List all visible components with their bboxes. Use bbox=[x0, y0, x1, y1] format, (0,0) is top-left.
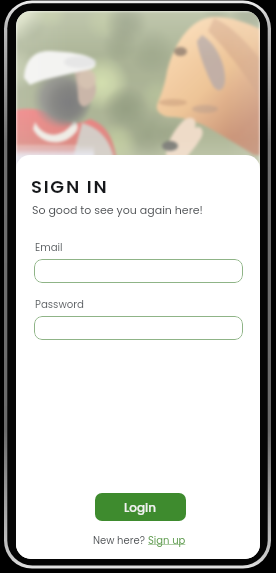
staticText: Login bbox=[124, 499, 157, 516]
staticText: So good to see you again here! bbox=[32, 202, 203, 217]
staticText: SIGN IN bbox=[31, 174, 109, 199]
staticText: New here? bbox=[93, 533, 148, 547]
button[interactable] bbox=[34, 316, 243, 340]
staticText: Password bbox=[35, 297, 84, 311]
button[interactable]: Login bbox=[95, 493, 186, 521]
button[interactable] bbox=[34, 259, 243, 283]
staticText: Email bbox=[35, 240, 63, 254]
button[interactable]: Sign up bbox=[148, 533, 186, 547]
